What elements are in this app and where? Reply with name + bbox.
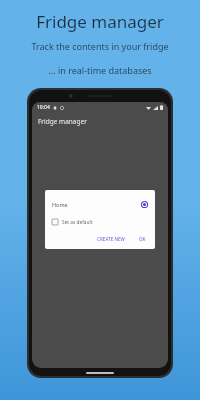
staticText: Fridge manager	[38, 117, 87, 126]
staticText: Track the contents in your fridge	[31, 40, 169, 52]
staticText: 10:04	[37, 104, 50, 111]
button[interactable]: OK	[136, 234, 149, 244]
staticText: ... in real-time databases	[48, 64, 152, 76]
staticText: OK	[139, 236, 146, 242]
button[interactable]: Home	[45, 197, 155, 211]
staticText: CREATE NEW	[97, 236, 125, 242]
staticText: Fridge manager	[36, 10, 164, 33]
button[interactable]: Set as default	[45, 216, 155, 228]
button[interactable]: CREATE NEW	[94, 234, 128, 244]
staticText: Home	[52, 201, 68, 208]
staticText: Set as default	[62, 219, 93, 226]
other: Home folder selected	[141, 201, 148, 208]
